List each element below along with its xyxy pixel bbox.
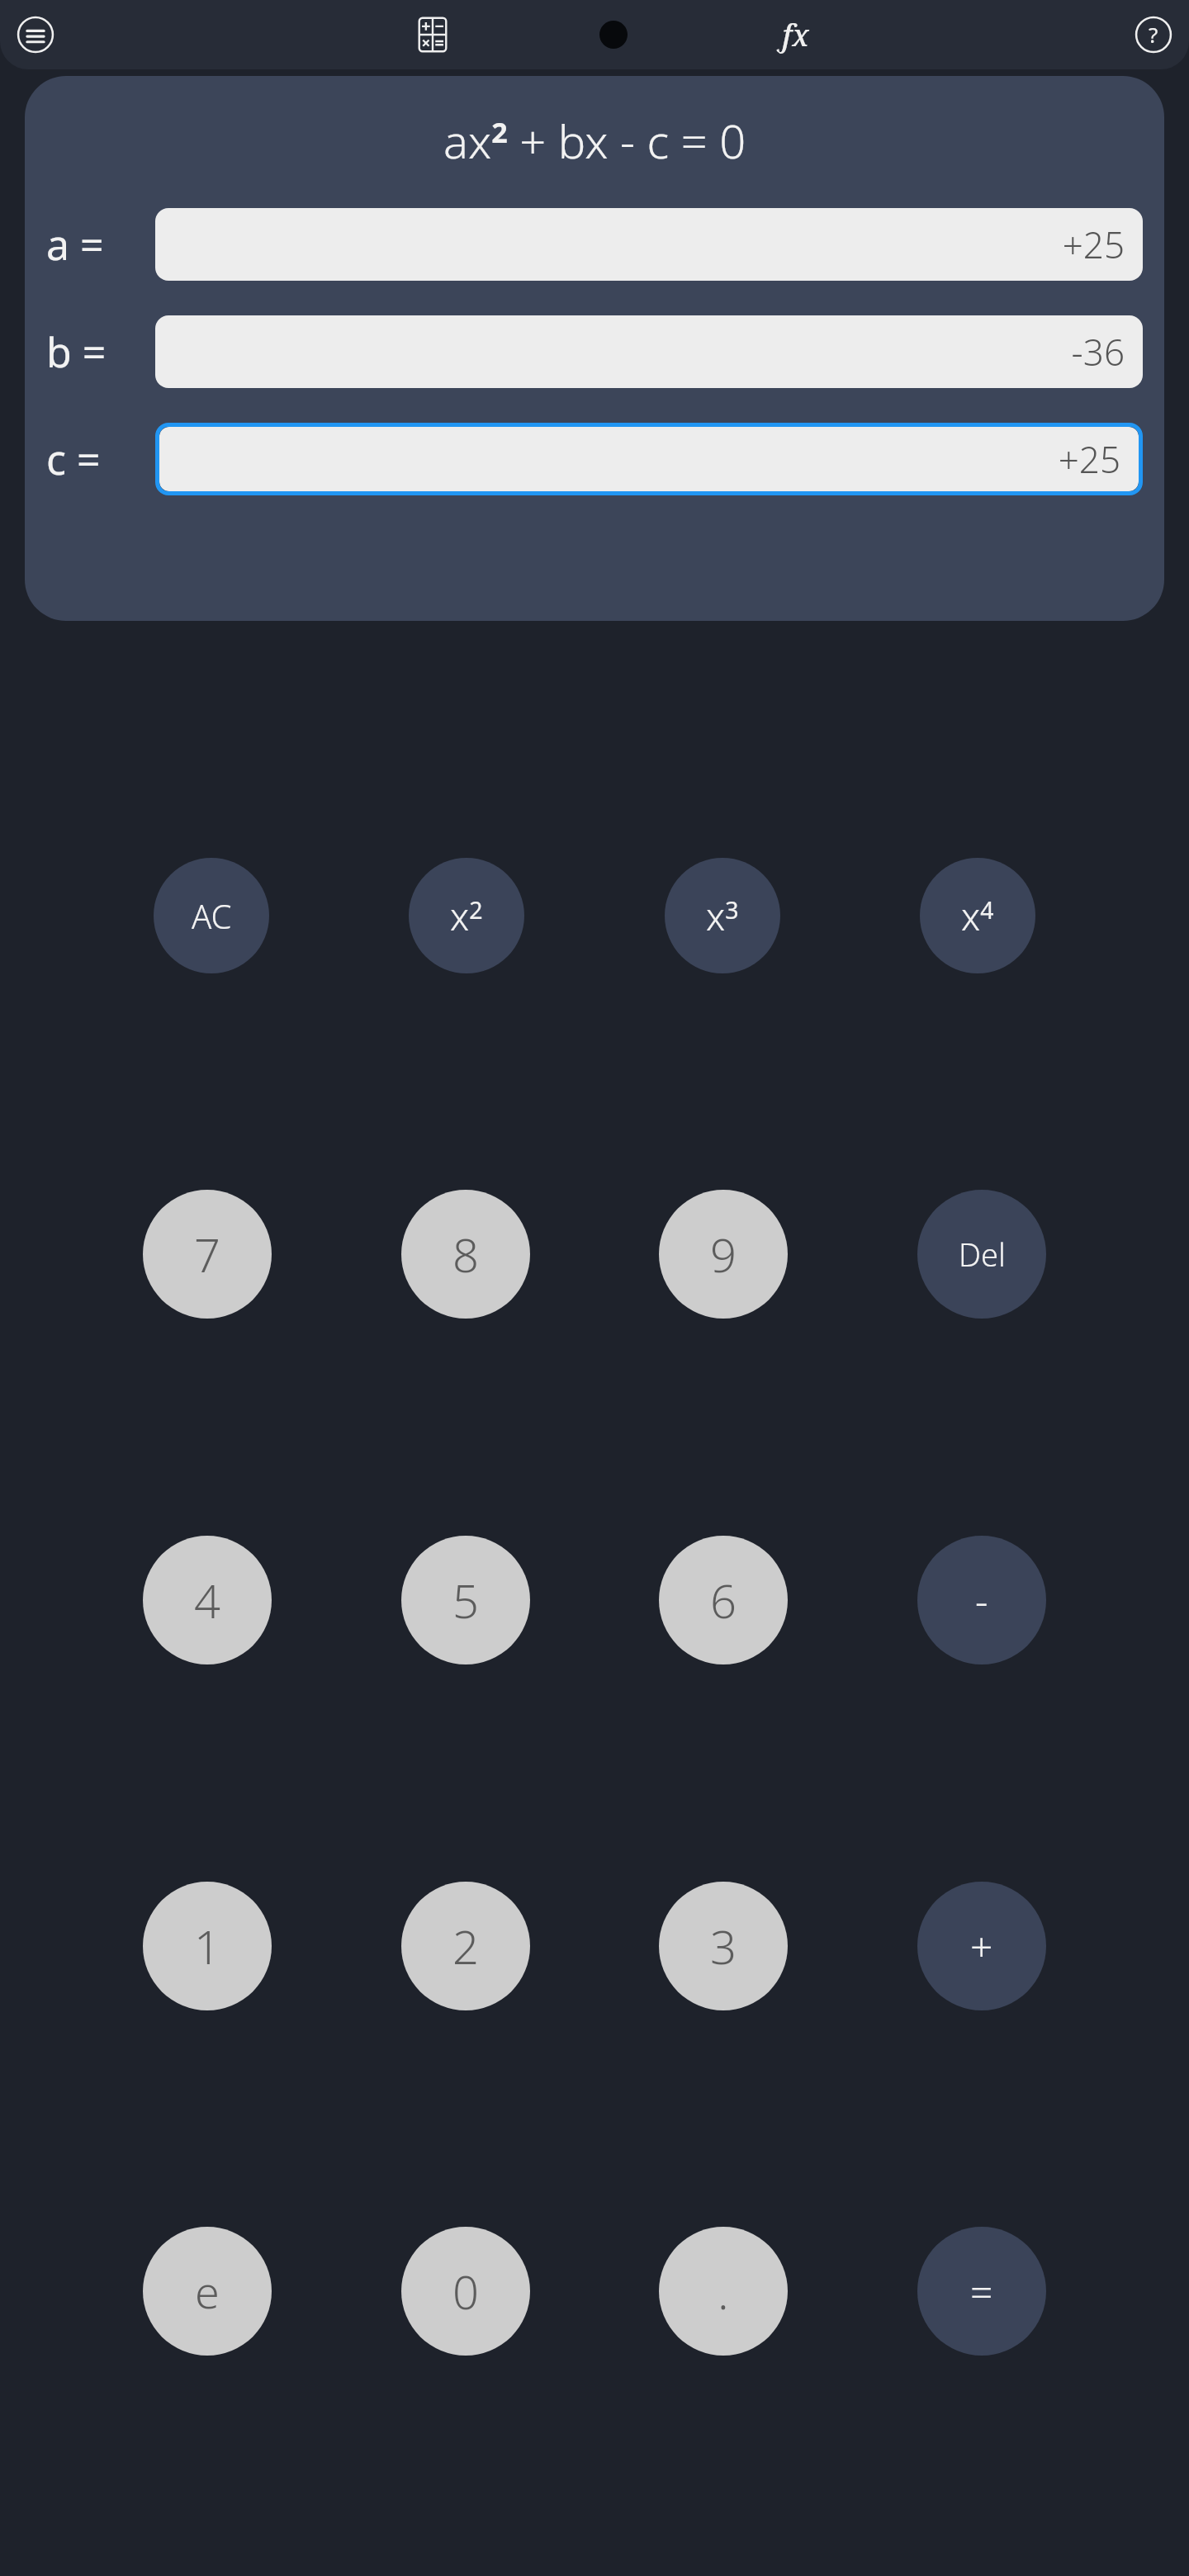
staticText: ax2 + bx - c = 0 <box>443 109 746 172</box>
staticText: +25 <box>1062 220 1125 269</box>
staticText: = <box>970 2265 993 2318</box>
staticText: 4 <box>194 1569 220 1631</box>
button[interactable]: 7 <box>143 1190 272 1319</box>
button[interactable]: Functions <box>770 11 818 59</box>
button[interactable]: Calculator <box>409 11 457 59</box>
button[interactable]: 3 <box>659 1882 788 2010</box>
staticText: 7 <box>194 1223 220 1286</box>
staticText: x4 <box>961 890 994 942</box>
staticText: ƒx <box>779 15 809 55</box>
button[interactable]: a = <box>46 208 1143 281</box>
staticText: 5 <box>452 1569 479 1631</box>
button[interactable]: 6 <box>659 1536 788 1664</box>
staticText: ? <box>1149 20 1158 49</box>
button[interactable]: = <box>917 2227 1046 2356</box>
button[interactable]: 8 <box>401 1190 530 1319</box>
button[interactable]: x4 <box>920 858 1035 973</box>
button[interactable]: Help <box>1130 11 1177 59</box>
staticText: 3 <box>710 1915 737 1977</box>
button[interactable]: 0 <box>401 2227 530 2356</box>
button[interactable]: 5 <box>401 1536 530 1664</box>
button[interactable]: Menu <box>12 11 59 59</box>
staticText: b = <box>46 324 107 380</box>
staticText: +25 <box>1058 434 1120 484</box>
staticText: -36 <box>1071 327 1125 376</box>
button[interactable]: + <box>917 1882 1046 2010</box>
staticText: 8 <box>452 1223 479 1286</box>
staticText: e <box>195 2261 220 2322</box>
button[interactable]: b = <box>46 315 1143 388</box>
staticText: 2 <box>452 1915 479 1977</box>
staticText: 0 <box>452 2260 479 2323</box>
button[interactable]: x2 <box>409 858 524 973</box>
staticText: c = <box>46 431 101 487</box>
staticText: x3 <box>706 890 739 942</box>
button[interactable]: Del <box>917 1190 1046 1319</box>
staticText: - <box>975 1574 988 1627</box>
staticText: + <box>970 1920 993 1973</box>
button[interactable]: . <box>659 2227 788 2356</box>
button[interactable]: AC <box>154 858 269 973</box>
staticText: . <box>718 2260 729 2323</box>
button[interactable]: e <box>143 2227 272 2356</box>
button[interactable]: 4 <box>143 1536 272 1664</box>
staticText: 6 <box>710 1569 737 1631</box>
button[interactable]: 1 <box>143 1882 272 2010</box>
staticText: 9 <box>710 1223 737 1286</box>
staticText: Del <box>959 1233 1006 1276</box>
staticText: 1 <box>194 1915 220 1977</box>
staticText: AC <box>192 893 232 938</box>
button[interactable]: 9 <box>659 1190 788 1319</box>
button[interactable]: 2 <box>401 1882 530 2010</box>
button[interactable]: c = <box>46 423 1143 495</box>
staticText: a = <box>46 216 104 272</box>
button[interactable]: - <box>917 1536 1046 1664</box>
button[interactable]: x3 <box>665 858 780 973</box>
staticText: x2 <box>450 890 483 942</box>
